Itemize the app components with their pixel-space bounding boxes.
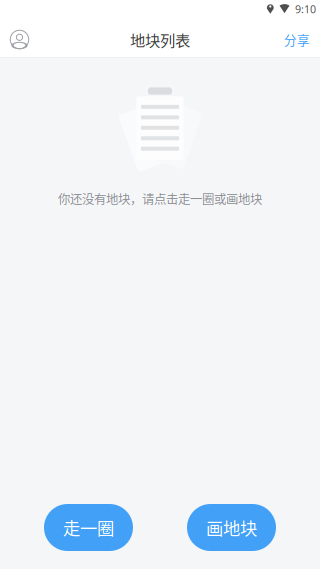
staticText: 分享 [284, 30, 310, 49]
button[interactable]: 分享 [272, 22, 320, 57]
staticText: 画地块 [206, 515, 257, 540]
staticText: 地块列表 [130, 28, 190, 51]
button[interactable]: 画地块 [187, 504, 276, 551]
button[interactable]: 走一圈 [44, 504, 133, 551]
staticText: 9:10 [295, 2, 316, 16]
staticText: 走一圈 [63, 515, 114, 540]
staticText: 你还没有地块，请点击走一圈或画地块 [58, 189, 262, 207]
button[interactable]: Account [0, 22, 41, 57]
